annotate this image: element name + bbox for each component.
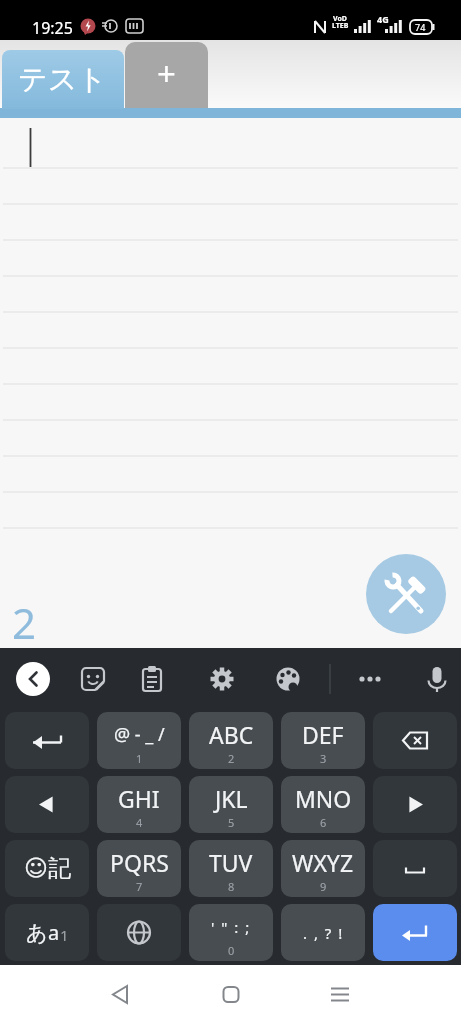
button[interactable] <box>373 904 457 961</box>
button[interactable]: ABC <box>189 712 273 769</box>
staticText: 9 <box>320 879 327 894</box>
button[interactable]: + <box>125 42 208 113</box>
button[interactable] <box>207 971 255 1019</box>
staticText: ' " : ; <box>211 917 251 937</box>
staticText: 8 <box>228 879 235 894</box>
button[interactable] <box>5 776 89 833</box>
button[interactable]: JKL <box>189 776 273 833</box>
staticText: WXYZ <box>292 847 354 878</box>
staticText: ☺記 <box>24 854 71 883</box>
staticText: 2 <box>228 751 235 766</box>
staticText: 3 <box>320 751 327 766</box>
staticText: 0 <box>228 943 235 958</box>
button[interactable] <box>373 840 457 897</box>
button[interactable]: PQRS <box>97 840 181 897</box>
staticText: 6 <box>320 815 327 830</box>
staticText: DEF <box>302 719 344 750</box>
button[interactable] <box>373 776 457 833</box>
staticText: 74 <box>415 21 426 33</box>
button[interactable]: あ <box>5 904 89 961</box>
button[interactable] <box>97 904 181 961</box>
button[interactable] <box>16 662 50 696</box>
button[interactable]: GHI <box>97 776 181 833</box>
button[interactable]: @ - _ / <box>97 712 181 769</box>
staticText: MNO <box>295 783 352 814</box>
staticText: TUV <box>209 847 253 878</box>
staticText: ABC <box>209 719 254 750</box>
button[interactable] <box>316 971 364 1019</box>
staticText: 2 <box>12 594 37 651</box>
button[interactable] <box>366 554 446 634</box>
button[interactable]: テスト <box>2 50 124 109</box>
staticText: 4 <box>136 815 143 830</box>
staticText: 19:25 <box>32 17 73 39</box>
staticText: 5 <box>228 815 235 830</box>
staticText: VoD <box>333 14 347 24</box>
button[interactable] <box>5 712 89 769</box>
staticText: あ <box>26 920 48 946</box>
button[interactable] <box>202 659 242 699</box>
button[interactable] <box>132 659 172 699</box>
button[interactable]: ' " : ; <box>189 904 273 961</box>
staticText: 1 <box>60 925 69 945</box>
staticText: . , ? ! <box>303 923 344 943</box>
button[interactable]: TUV <box>189 840 273 897</box>
button[interactable]: . , ? ! <box>281 904 365 961</box>
staticText: テスト <box>18 61 108 98</box>
staticText: @ - _ / <box>114 722 165 747</box>
button[interactable]: ☺記 <box>5 840 89 897</box>
button[interactable] <box>96 971 144 1019</box>
staticText: 7 <box>136 879 143 894</box>
staticText: 4G <box>377 13 389 25</box>
staticText: 1 <box>136 751 143 766</box>
button[interactable] <box>73 659 113 699</box>
staticText: JKL <box>215 783 248 814</box>
staticText: LTEB <box>332 21 349 31</box>
staticText: + <box>157 51 176 96</box>
staticText: a <box>48 919 60 946</box>
staticText: GHI <box>118 783 160 814</box>
button[interactable]: MNO <box>281 776 365 833</box>
staticText: PQRS <box>110 847 169 878</box>
button[interactable] <box>268 659 308 699</box>
button[interactable]: DEF <box>281 712 365 769</box>
button[interactable] <box>417 659 457 699</box>
button[interactable]: WXYZ <box>281 840 365 897</box>
button[interactable] <box>373 712 457 769</box>
